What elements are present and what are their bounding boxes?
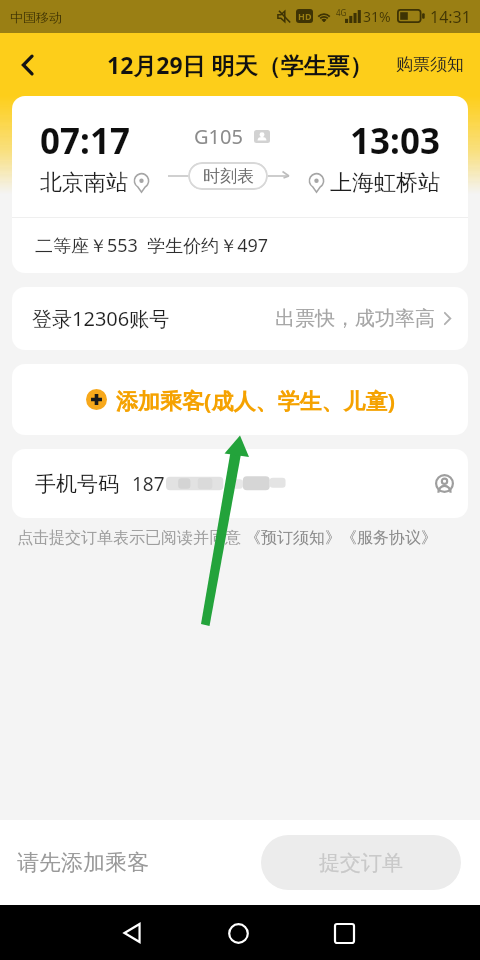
button[interactable]: 时刻表 (188, 162, 268, 190)
staticText: 07:17 (40, 117, 130, 165)
button[interactable]: Back (108, 909, 156, 957)
button[interactable]: Home (214, 909, 262, 957)
staticText: 手机号码 (35, 471, 119, 497)
button[interactable]: 添加乘客(成人、学生、儿童) (12, 364, 468, 435)
staticText: 中国移动 (10, 9, 62, 25)
staticText: 二等座￥553 学生价约￥497 (35, 233, 269, 258)
staticText: 点击提交订单表示已阅读并同意 (17, 528, 241, 548)
staticText: 31% (363, 7, 391, 26)
staticText: 购票须知 (396, 54, 464, 75)
staticText: 时刻表 (203, 166, 254, 187)
staticText: 《预订须知》《服务协议》 (245, 528, 437, 548)
staticText: 4G (336, 7, 347, 18)
button[interactable]: 购票须知 (380, 40, 480, 89)
staticText: 提交订单 (319, 850, 403, 876)
staticText: 14:31 (430, 6, 471, 28)
staticText: G105 (194, 123, 243, 150)
button[interactable]: 提交订单 (261, 835, 461, 890)
staticText: 登录12306账号 (32, 305, 170, 332)
staticText: HD (298, 10, 312, 22)
staticText: 13:03 (350, 117, 440, 165)
staticText: 出票快，成功率高 (275, 306, 435, 331)
staticText: 北京南站 (40, 169, 128, 197)
button[interactable]: 登录12306账号 (12, 287, 468, 350)
button[interactable]: Recents (320, 909, 368, 957)
staticText: 上海虹桥站 (330, 169, 440, 197)
staticText: 187 (132, 471, 165, 497)
staticText: 添加乘客(成人、学生、儿童) (116, 385, 395, 415)
staticText: 请先添加乘客 (17, 849, 149, 877)
button[interactable]: 返回 (5, 42, 50, 87)
button[interactable]: 手机号码 (12, 449, 468, 518)
staticText: 12月29日 明天（学生票） (107, 49, 373, 80)
